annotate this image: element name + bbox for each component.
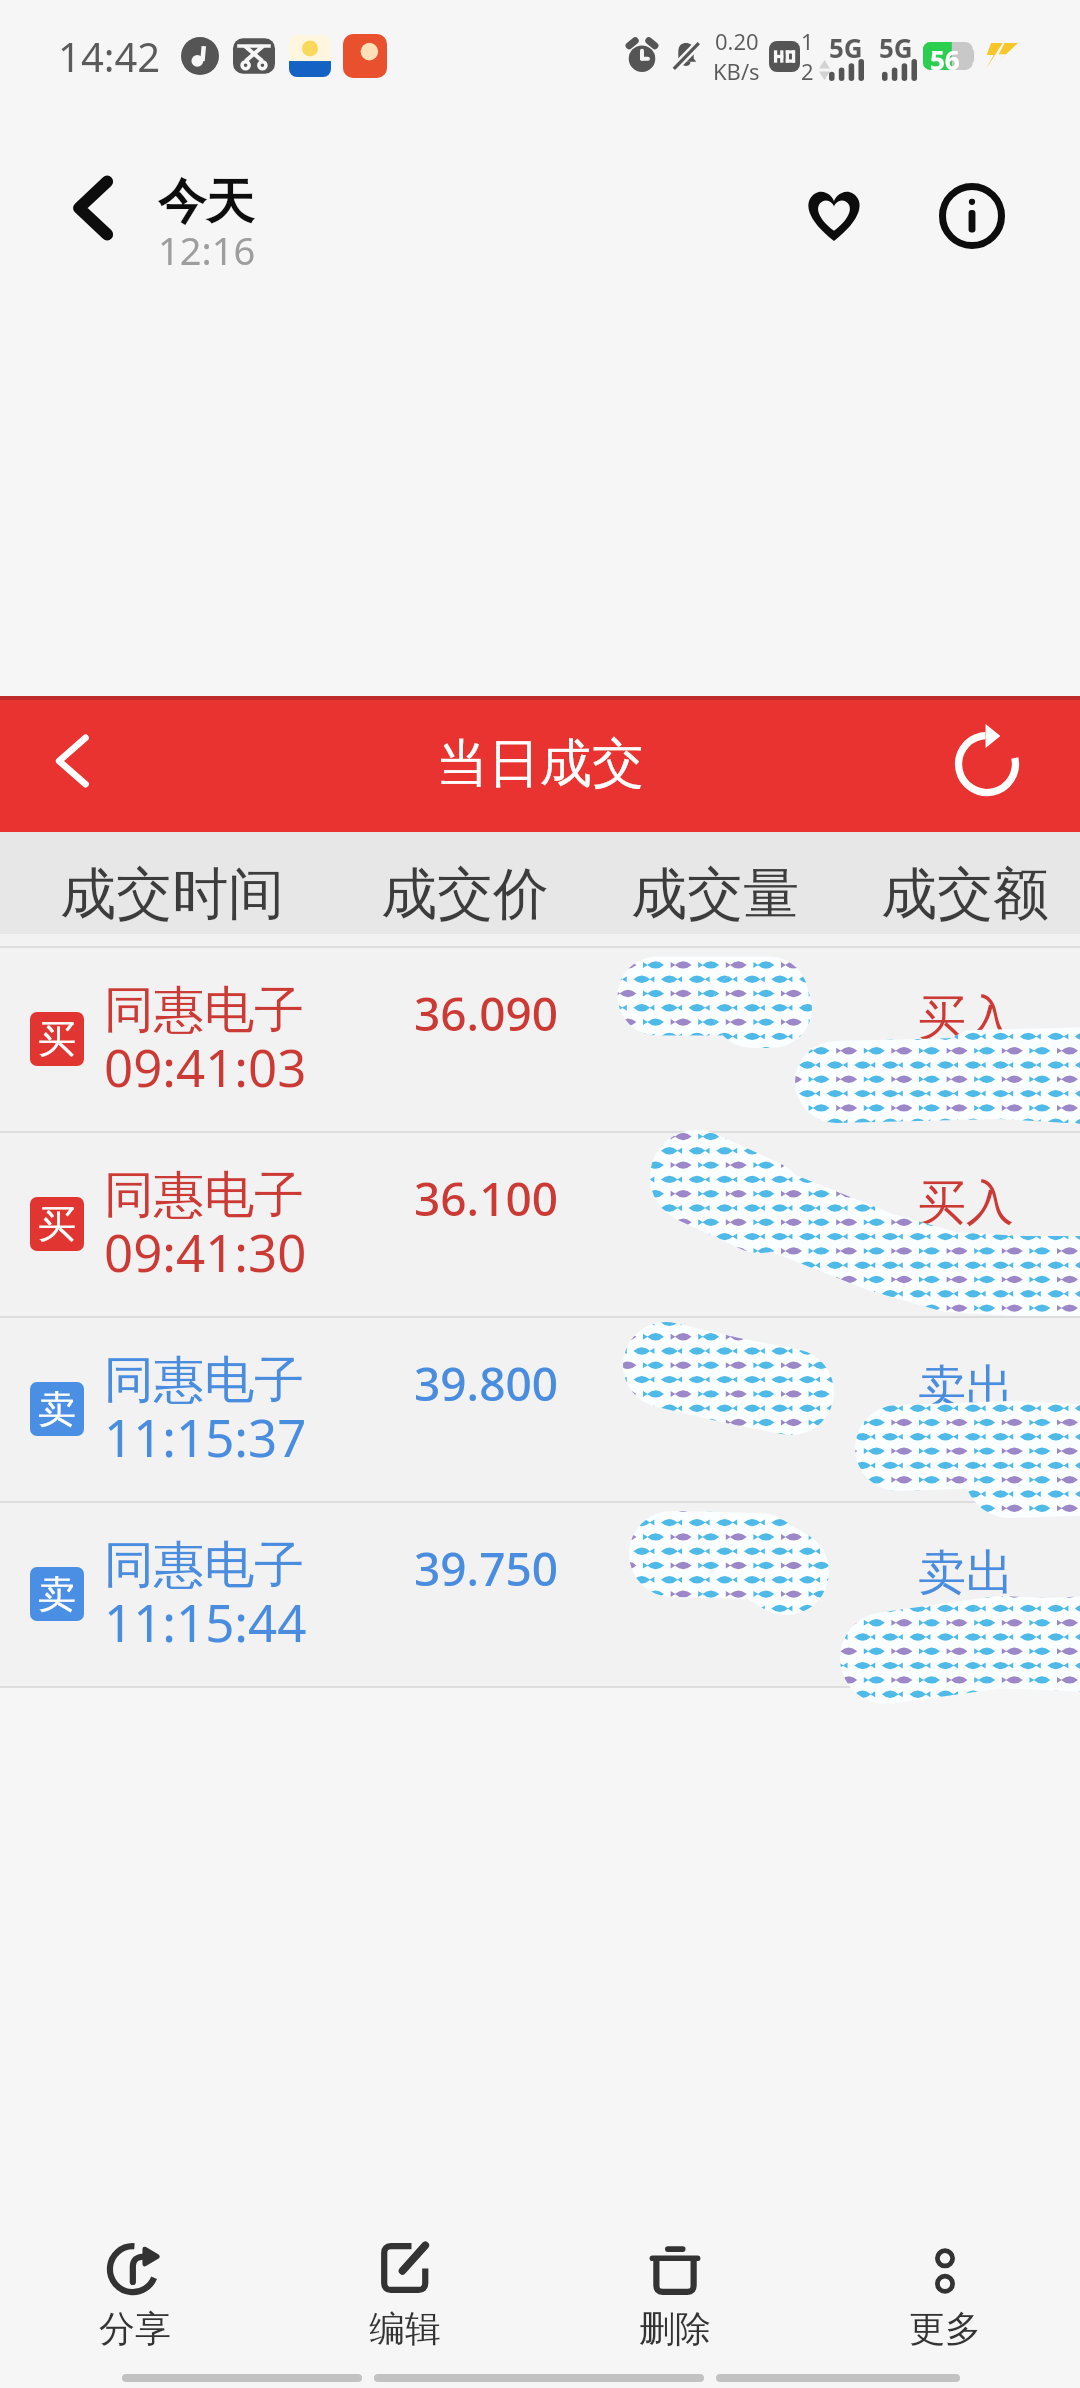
staticText: KB/s [713, 56, 760, 86]
staticText: 买 [38, 1015, 76, 1063]
staticText: 14:42 [58, 29, 161, 83]
staticText: 39.800 [414, 1352, 559, 1415]
staticText: 11:15:44 [104, 1587, 307, 1656]
staticText: 56 [930, 42, 960, 70]
staticText: 卖 [38, 1385, 76, 1433]
button[interactable]: 更多 [810, 2210, 1080, 2351]
staticText: 买入 [918, 988, 1014, 1048]
button[interactable]: Back [29, 718, 115, 804]
staticText: 5G [829, 30, 863, 65]
button[interactable]: 买 [0, 948, 1080, 1131]
staticText: 36.090 [414, 982, 559, 1045]
staticText: 同惠电子 [104, 1349, 304, 1412]
staticText: 今天 [158, 172, 254, 232]
staticText: 2 [801, 56, 814, 86]
button[interactable]: Back [52, 168, 132, 248]
staticText: 11:15:37 [104, 1402, 307, 1471]
button[interactable]: Info [922, 166, 1022, 266]
staticText: 买 [38, 1200, 76, 1248]
staticText: 0.20 [715, 26, 759, 56]
staticText: 成交量 [631, 859, 799, 930]
button[interactable]: Refresh [942, 719, 1032, 809]
staticText: 卖出 [918, 1358, 1014, 1418]
button[interactable]: 删除 [540, 2210, 810, 2351]
staticText: 12:16 [158, 224, 256, 276]
button[interactable]: 卖 [0, 1318, 1080, 1501]
staticText: 36.100 [414, 1167, 559, 1230]
staticText: 删除 [639, 2306, 711, 2351]
staticText: 39.750 [414, 1537, 559, 1600]
staticText: 分享 [99, 2306, 171, 2351]
staticText: 09:41:30 [104, 1217, 307, 1286]
staticText: 买入 [918, 1173, 1014, 1233]
button[interactable]: 分享 [0, 2210, 270, 2351]
staticText: 5G [879, 30, 913, 65]
staticText: 09:41:03 [104, 1032, 307, 1101]
staticText: 同惠电子 [104, 1164, 304, 1227]
staticText: 卖出 [918, 1543, 1014, 1603]
staticText: 成交额 [881, 859, 1049, 930]
button[interactable]: 买 [0, 1133, 1080, 1316]
button[interactable]: 卖 [0, 1503, 1080, 1686]
staticText: 1 [801, 26, 814, 56]
staticText: 同惠电子 [104, 979, 304, 1042]
button[interactable]: 编辑 [270, 2210, 540, 2351]
staticText: 编辑 [369, 2306, 441, 2351]
staticText: 卖 [38, 1570, 76, 1618]
staticText: 更多 [909, 2306, 981, 2351]
button[interactable]: Favorite [784, 164, 884, 264]
staticText: 当日成交 [436, 731, 644, 797]
staticText: 成交时间 [60, 859, 284, 930]
staticText: 同惠电子 [104, 1534, 304, 1597]
staticText: 成交价 [381, 859, 549, 930]
